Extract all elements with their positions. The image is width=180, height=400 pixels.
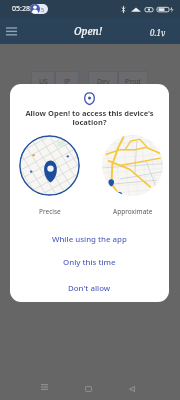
staticText: 0.1v — [150, 27, 166, 38]
staticText: Don't allow — [68, 283, 111, 294]
button[interactable]: Navigation menu — [0, 17, 24, 43]
staticText: Approximate — [113, 207, 153, 216]
button[interactable]: Prod — [118, 71, 148, 91]
staticText: Allow Open! to access this device's loca… — [10, 108, 169, 128]
staticText: Prod — [125, 77, 141, 87]
button[interactable]: Precise — [19, 135, 80, 217]
staticText: Dev — [97, 77, 110, 87]
button[interactable]: Don't allow — [10, 279, 169, 297]
staticText: US — [39, 77, 48, 87]
staticText: 05:28 — [12, 4, 30, 14]
staticText: While using the app — [52, 234, 127, 245]
button[interactable]: Home — [78, 379, 98, 399]
button[interactable]: Approximate — [102, 135, 163, 217]
button[interactable]: Recent apps — [34, 377, 54, 397]
button[interactable]: JP — [55, 71, 79, 91]
staticText: Precise — [39, 207, 61, 216]
staticText: 5 — [41, 6, 45, 13]
button[interactable]: Dev — [88, 71, 118, 91]
button[interactable]: Back — [122, 379, 142, 399]
button[interactable]: US — [31, 71, 55, 91]
staticText: JP — [64, 77, 71, 87]
staticText: Open! — [74, 24, 103, 38]
button[interactable]: Only this time — [10, 253, 169, 271]
button[interactable]: While using the app — [10, 230, 169, 248]
staticText: Only this time — [63, 257, 116, 268]
